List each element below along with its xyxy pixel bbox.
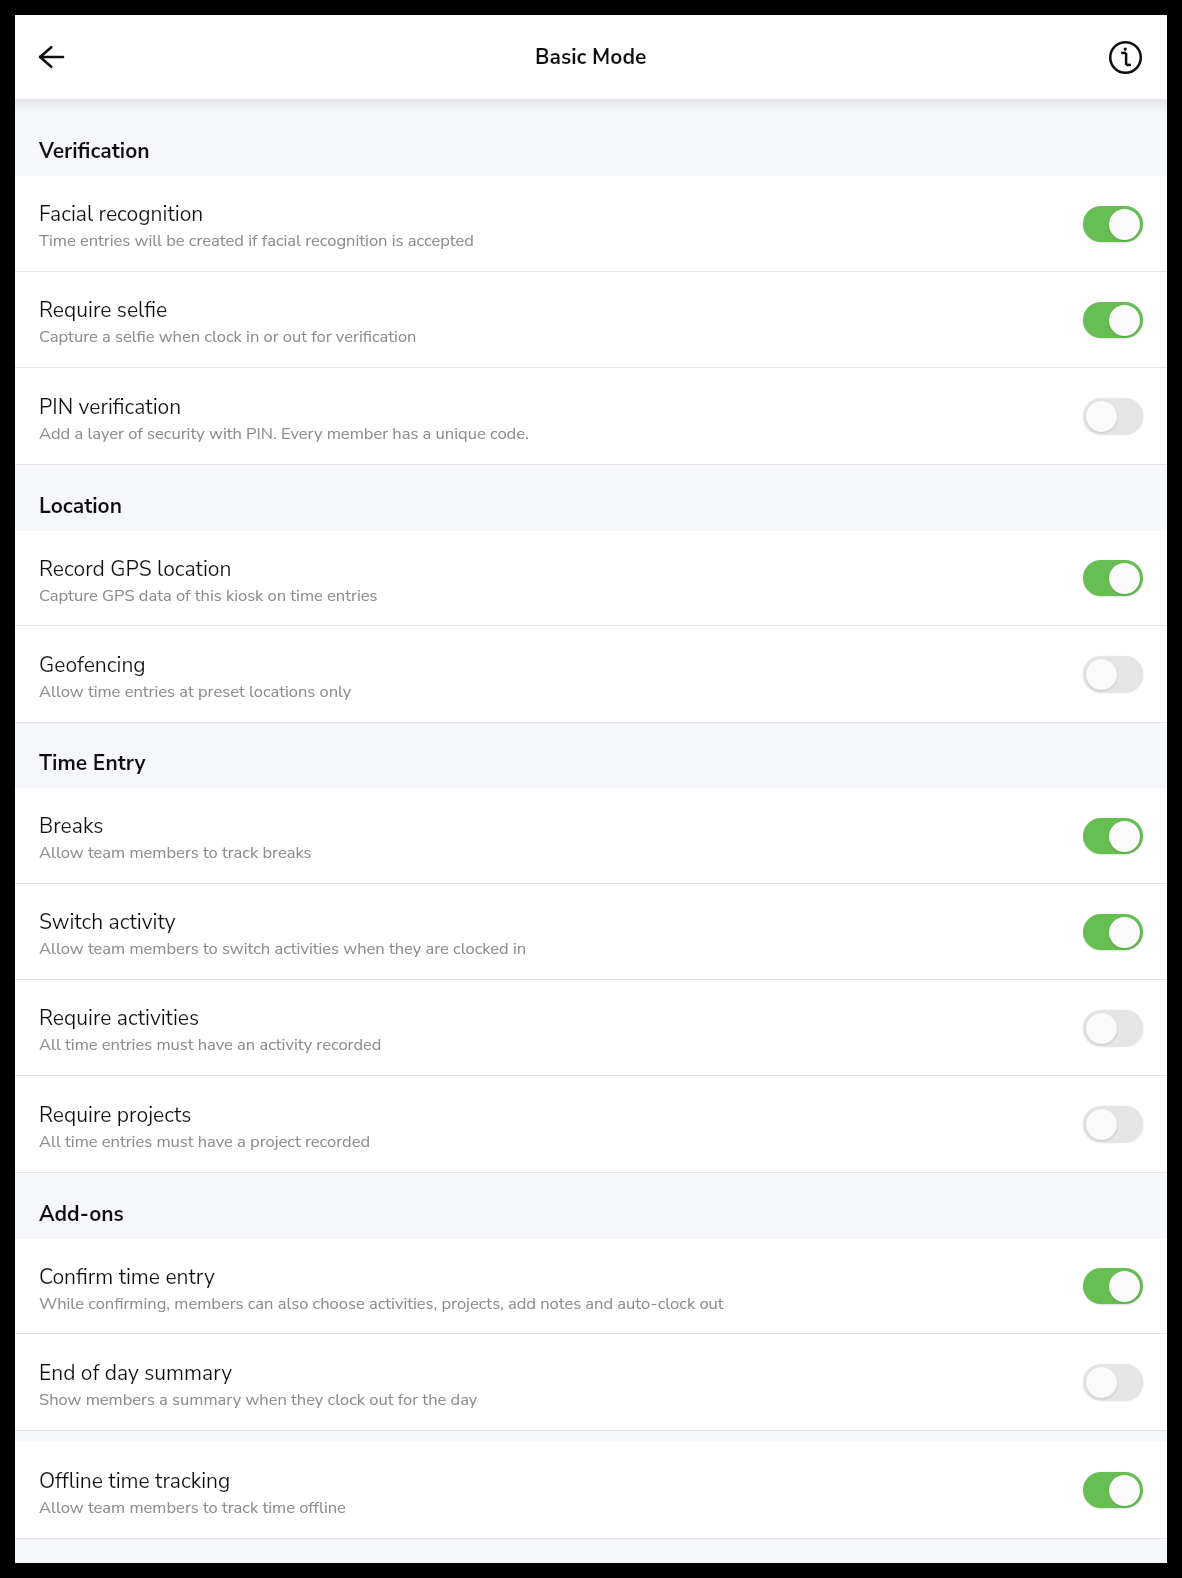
staticText: End of day summary — [39, 1359, 233, 1388]
staticText: All time entries must have a project rec… — [39, 1130, 371, 1153]
staticText: Capture a selfie when clock in or out fo… — [39, 325, 417, 348]
staticText: Switch activity — [39, 908, 176, 937]
staticText: PIN verification — [39, 393, 182, 422]
staticText: Require selfie — [39, 296, 168, 325]
staticText: Time Entry — [39, 749, 146, 778]
staticText: Add-ons — [39, 1200, 124, 1229]
staticText: Show members a summary when they clock o… — [39, 1388, 478, 1411]
staticText: Record GPS location — [39, 555, 232, 584]
button[interactable]: Facial recognition — [15, 176, 1167, 271]
staticText: Allow team members to track breaks — [39, 841, 312, 864]
staticText: Require projects — [39, 1101, 192, 1130]
button[interactable]: Breaks — [15, 788, 1167, 883]
staticText: Require activities — [39, 1004, 200, 1033]
staticText: Allow team members to track time offline — [39, 1496, 346, 1519]
staticText: Breaks — [39, 812, 104, 841]
button[interactable]: Require activities — [15, 980, 1167, 1075]
button[interactable]: Require selfie — [15, 272, 1167, 367]
staticText: Confirm time entry — [39, 1263, 215, 1292]
button[interactable]: Switch activity — [15, 884, 1167, 979]
staticText: Allow time entries at preset locations o… — [39, 680, 352, 703]
button[interactable]: Back — [27, 33, 75, 81]
staticText: Basic Mode — [535, 43, 647, 72]
button[interactable]: PIN verification — [15, 368, 1167, 464]
button[interactable]: Information — [1101, 33, 1149, 81]
staticText: Capture GPS data of this kiosk on time e… — [39, 584, 378, 606]
staticText: Add a layer of security with PIN. Every … — [39, 422, 529, 445]
staticText: Geofencing — [39, 651, 146, 680]
staticText: Time entries will be created if facial r… — [39, 229, 474, 252]
staticText: Offline time tracking — [39, 1467, 231, 1496]
staticText: Verification — [39, 137, 150, 166]
button[interactable]: End of day summary — [15, 1334, 1167, 1430]
staticText: Facial recognition — [39, 200, 204, 229]
staticText: Location — [39, 492, 122, 521]
button[interactable]: Geofencing — [15, 626, 1167, 722]
button[interactable]: Confirm time entry — [15, 1239, 1167, 1333]
staticText: While confirming, members can also choos… — [39, 1292, 724, 1314]
staticText: Allow team members to switch activities … — [39, 937, 527, 960]
button[interactable]: Record GPS location — [15, 531, 1167, 625]
staticText: All time entries must have an activity r… — [39, 1033, 382, 1056]
button[interactable]: Offline time tracking — [15, 1442, 1167, 1538]
button[interactable]: Require projects — [15, 1076, 1167, 1172]
